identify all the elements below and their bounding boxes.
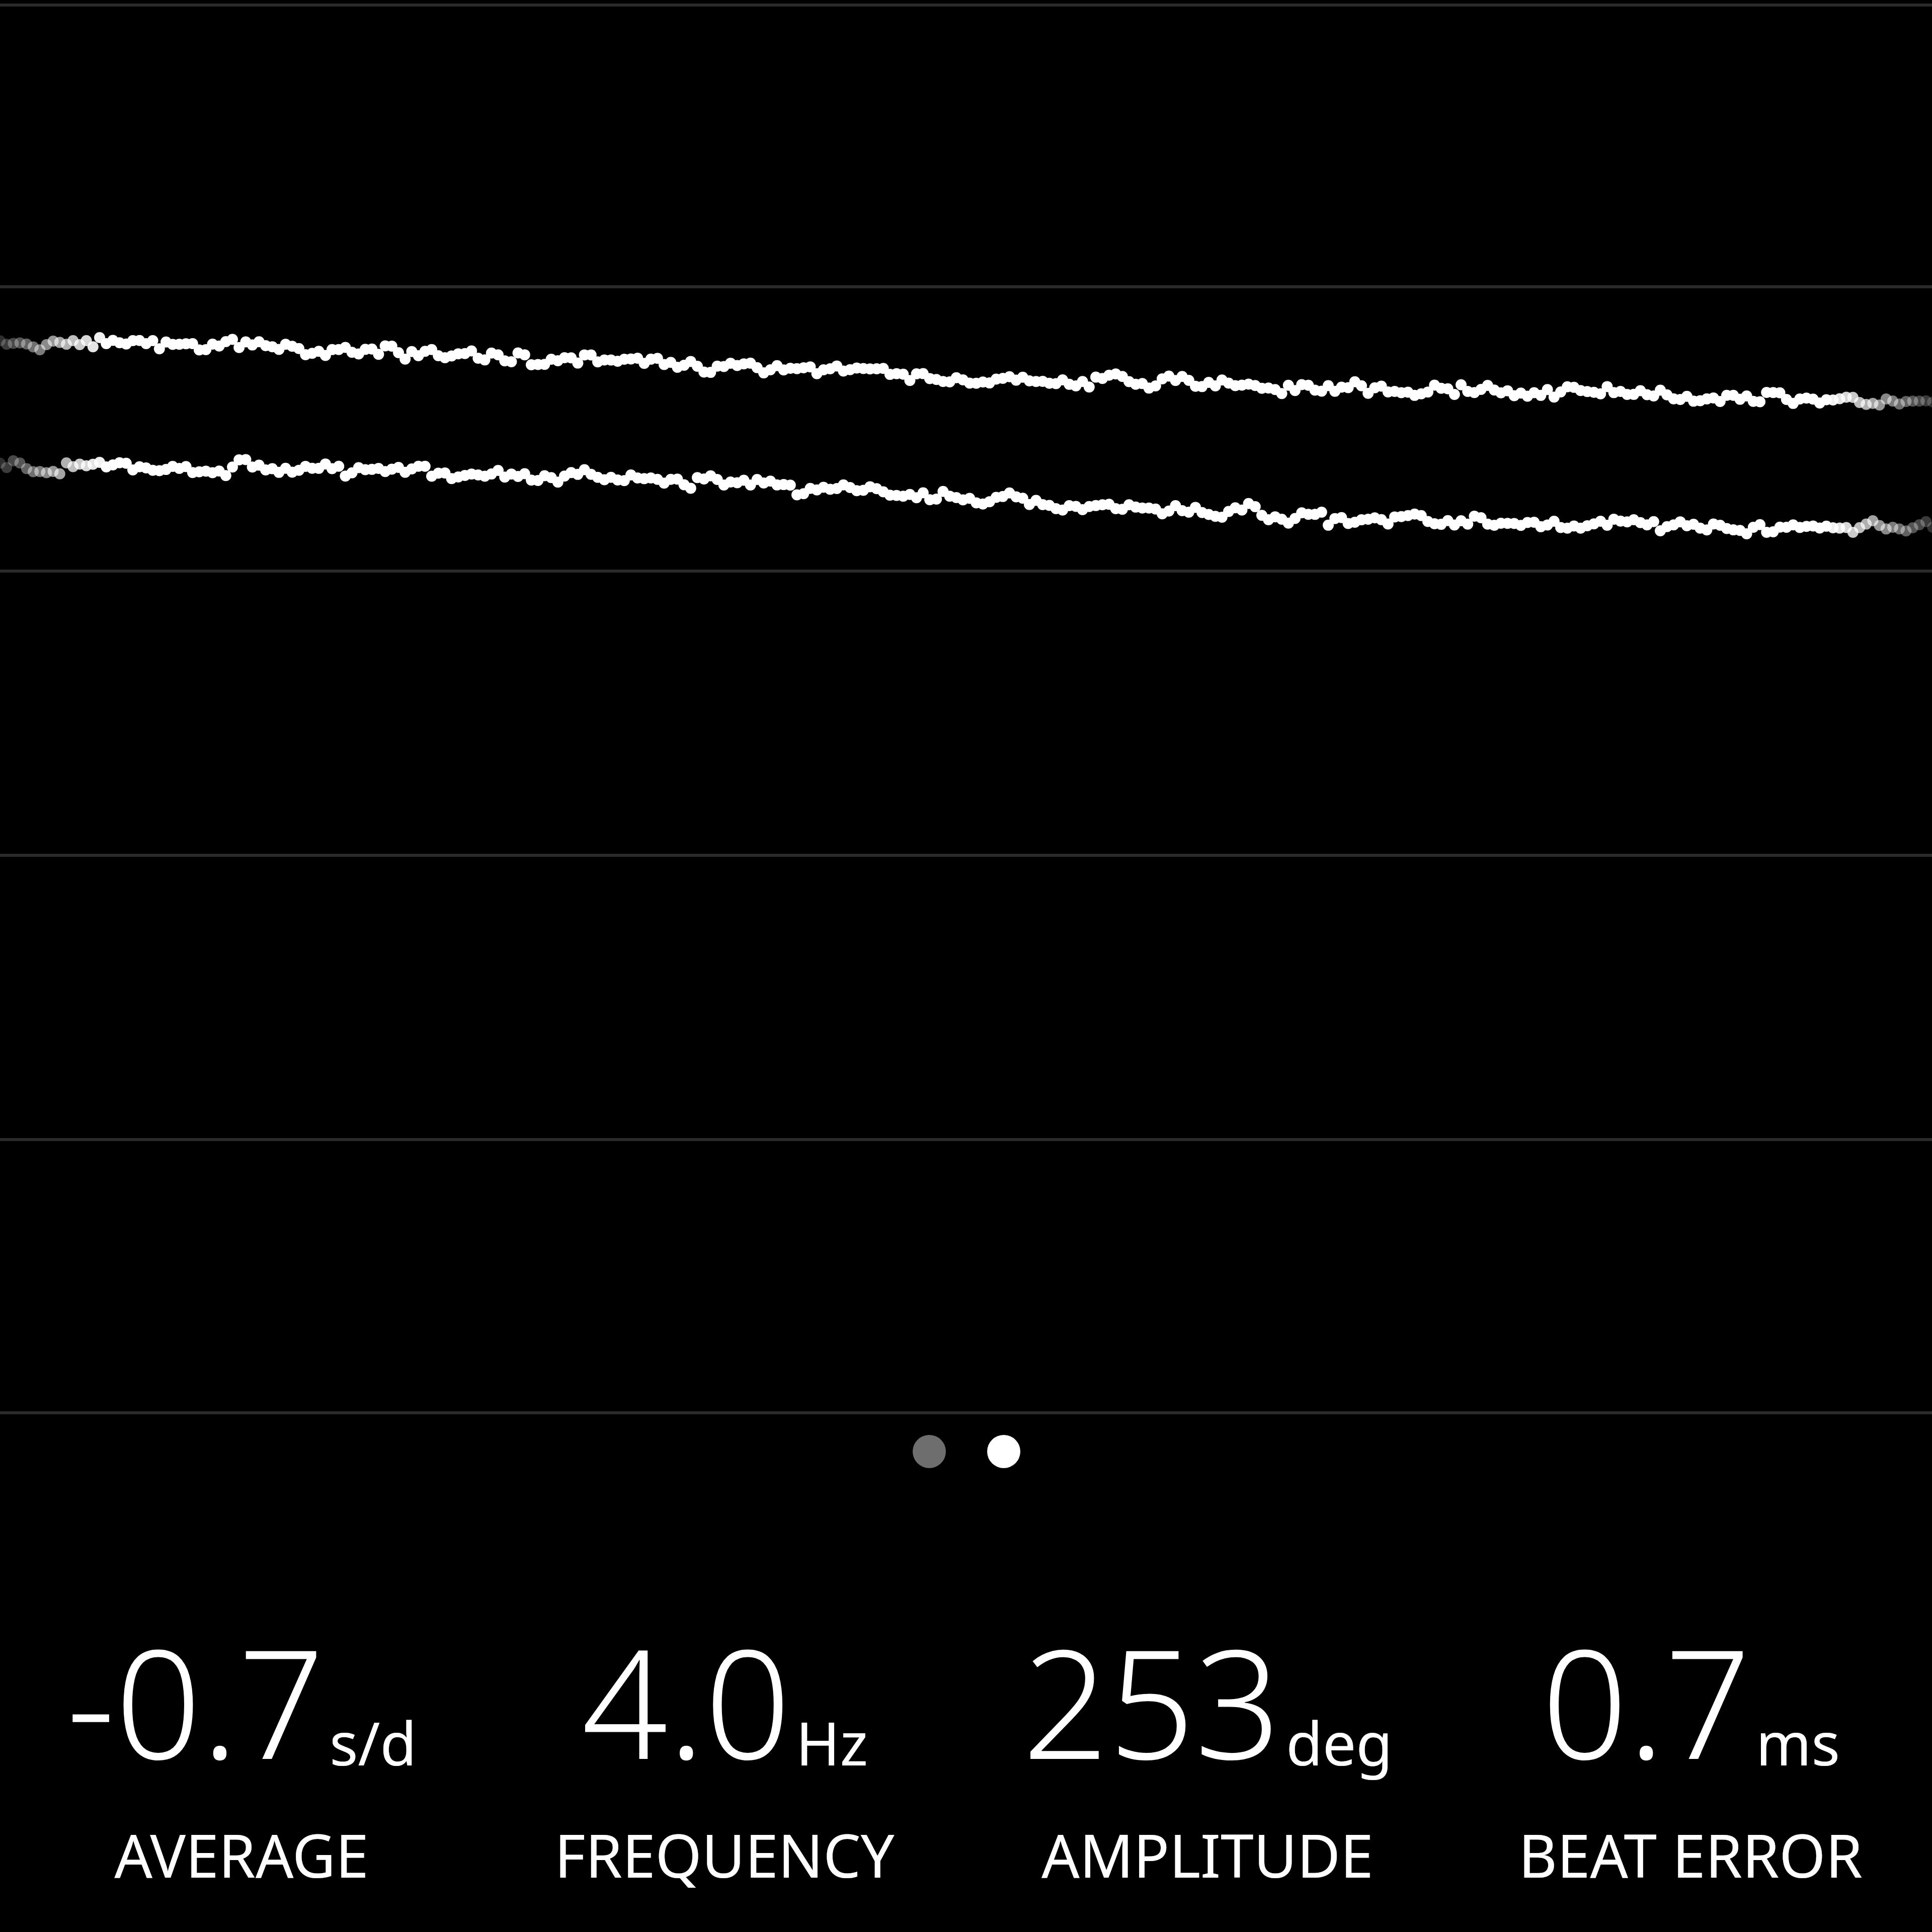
staticText: deg <box>1286 1702 1393 1783</box>
staticText: 253 <box>1022 1597 1281 1803</box>
button[interactable]: Page indicator, page 2 of 2 <box>913 1435 1020 1468</box>
button[interactable]: -0.7 <box>0 1597 483 1895</box>
staticText: FREQUENCY <box>554 1814 895 1895</box>
button[interactable]: 4.0 <box>483 1597 966 1895</box>
staticText: AMPLITUDE <box>1041 1814 1374 1895</box>
staticText: -0.7 <box>66 1597 325 1803</box>
button[interactable]: 253 <box>966 1597 1449 1895</box>
button[interactable]: 0.7 <box>1449 1597 1932 1895</box>
staticText: ms <box>1756 1702 1840 1783</box>
staticText: s/d <box>330 1702 417 1783</box>
staticText: Hz <box>796 1702 868 1783</box>
staticText: 0.7 <box>1542 1597 1751 1803</box>
staticText: 4.0 <box>582 1597 791 1803</box>
button[interactable]: Timegrapher trace <box>0 0 1932 1424</box>
staticText: BEAT ERROR <box>1518 1814 1863 1895</box>
staticText: AVERAGE <box>114 1814 369 1895</box>
